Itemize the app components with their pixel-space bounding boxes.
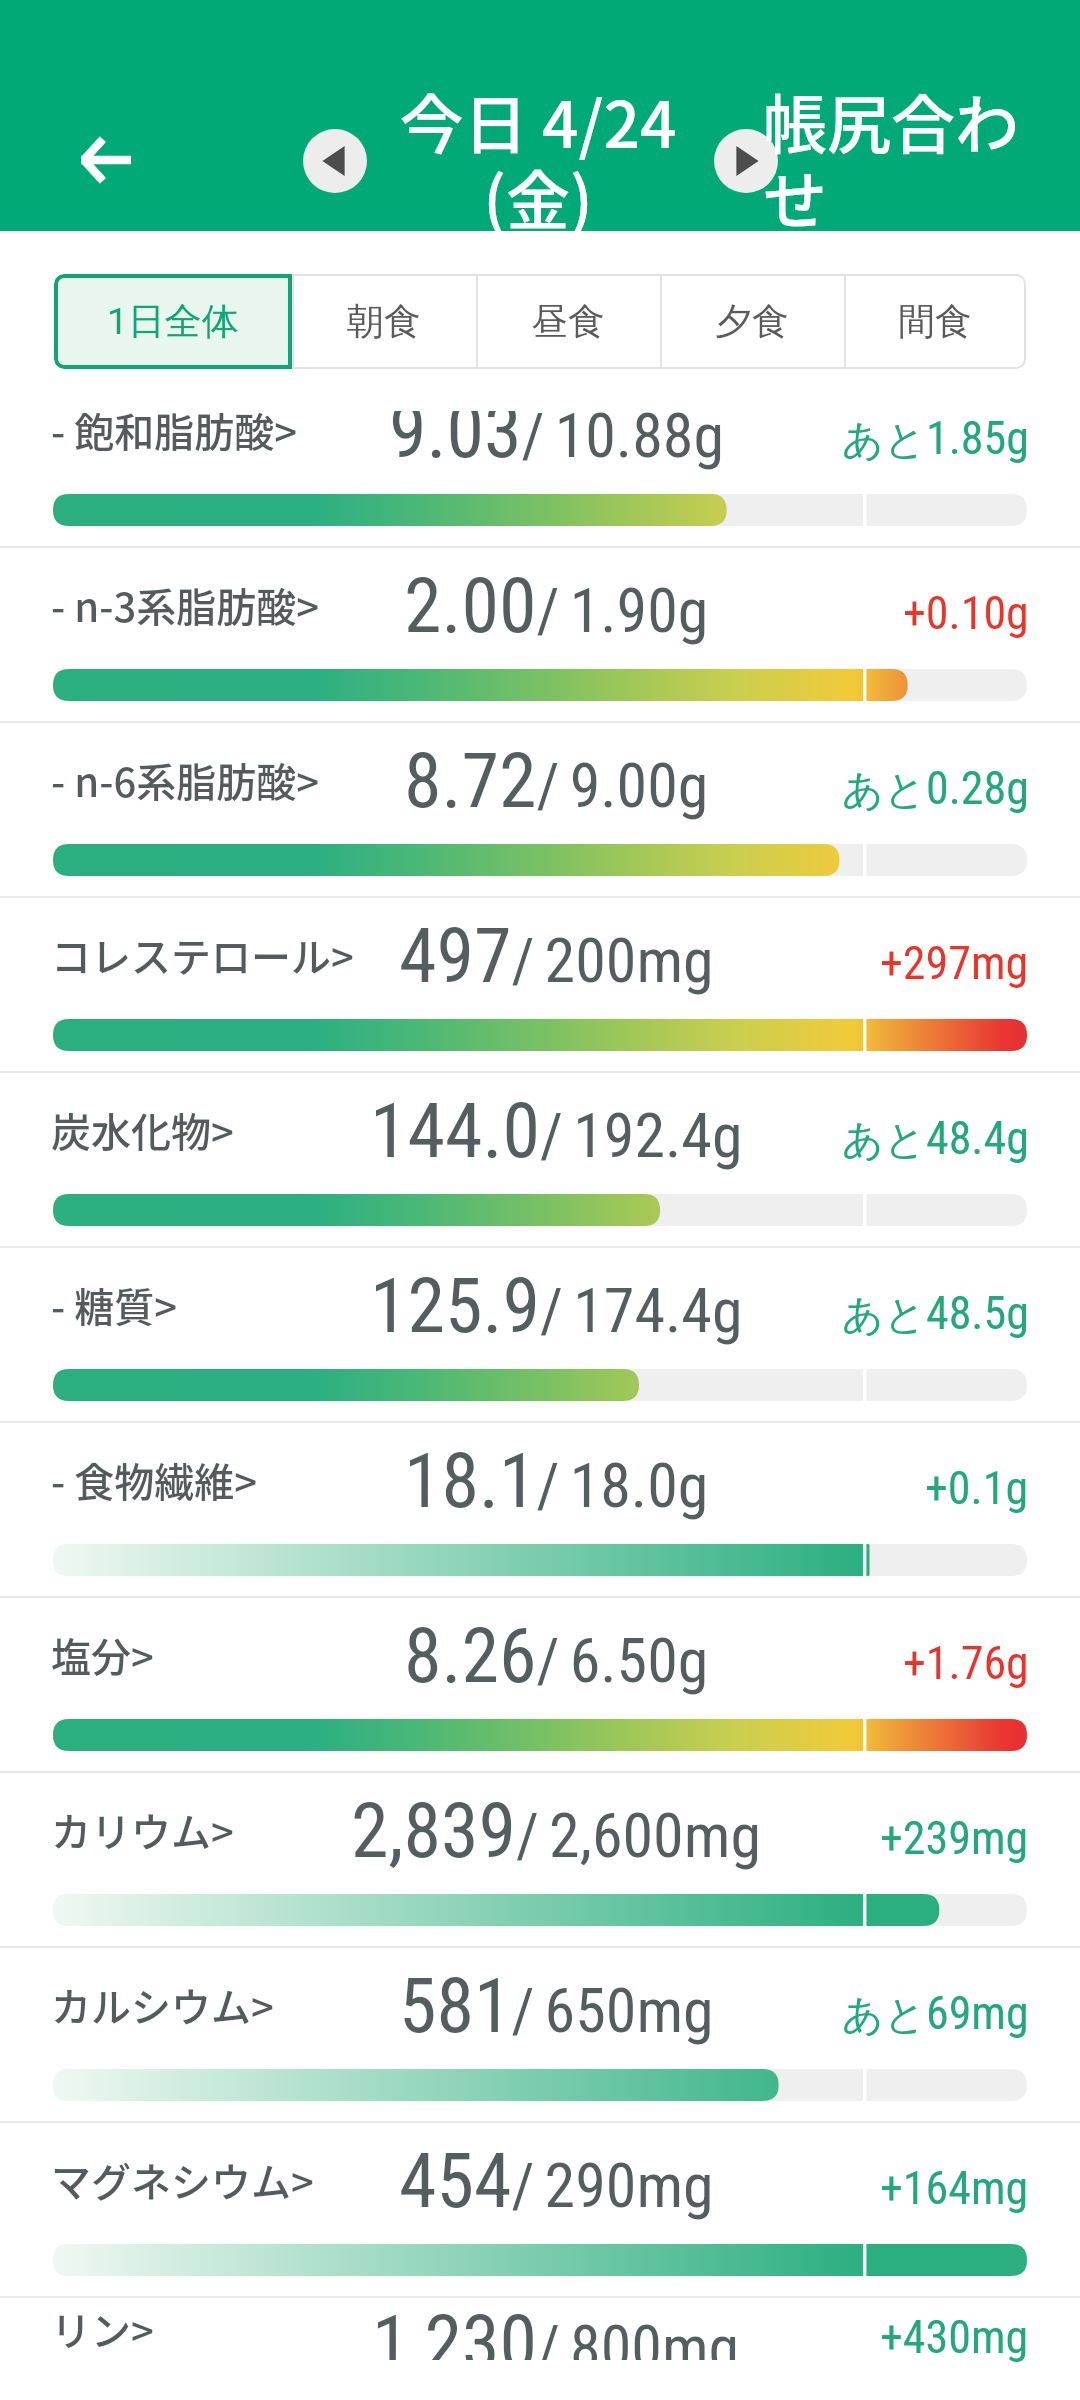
staticText: あと0.28g	[842, 761, 1029, 816]
button[interactable]: - 糖質>	[0, 1246, 1080, 1421]
staticText: カルシウム>	[51, 1976, 274, 2034]
button[interactable]: 間食	[844, 274, 1026, 369]
staticText: +164mg	[880, 2161, 1029, 2215]
staticText: 8.72/ 9.00g	[404, 736, 709, 825]
button[interactable]: 1日全体	[54, 274, 292, 369]
staticText: 今日 4/24 (金)	[338, 74, 738, 242]
staticText: 8.26/ 6.50g	[404, 1611, 709, 1700]
staticText: 18.1/ 18.0g	[404, 1436, 709, 1525]
staticText: +0.1g	[925, 1461, 1029, 1515]
staticText: - 食物繊維>	[51, 1451, 258, 1509]
staticText: - 糖質>	[51, 1276, 178, 1334]
staticText: 夕食	[715, 298, 789, 345]
staticText: 1日全体	[107, 298, 239, 345]
staticText: 朝食	[347, 298, 421, 345]
staticText: 454/ 290mg	[399, 2136, 714, 2225]
staticText: 2.00/ 1.90g	[404, 561, 709, 650]
staticText: +430mg	[880, 2310, 1029, 2364]
staticText: - n-3系脂肪酸>	[51, 576, 320, 634]
button[interactable]: リン>	[0, 2296, 1080, 2360]
button[interactable]: - n-6系脂肪酸>	[0, 721, 1080, 896]
staticText: - 飽和脂肪酸>	[51, 411, 298, 459]
button[interactable]: Back	[46, 100, 166, 220]
button[interactable]: Previous day	[303, 129, 367, 193]
staticText: リン>	[51, 2300, 154, 2358]
staticText: 125.9/ 174.4g	[370, 1261, 743, 1350]
button[interactable]: マグネシウム>	[0, 2121, 1080, 2296]
staticText: マグネシウム>	[51, 2151, 314, 2209]
staticText: 581/ 650mg	[399, 1961, 714, 2050]
staticText: あと48.5g	[842, 1286, 1029, 1341]
staticText: カリウム>	[51, 1801, 234, 1859]
button[interactable]: - n-3系脂肪酸>	[0, 546, 1080, 721]
staticText: 間食	[898, 298, 972, 345]
staticText: コレステロール>	[51, 926, 354, 984]
staticText: +297mg	[880, 936, 1029, 990]
button[interactable]: 朝食	[292, 274, 476, 369]
staticText: 9.03/ 10.88g	[389, 411, 724, 475]
staticText: あと48.4g	[842, 1111, 1029, 1166]
staticText: 144.0/ 192.4g	[370, 1086, 743, 1175]
staticText: +0.10g	[903, 586, 1029, 640]
staticText: あと69mg	[842, 1986, 1029, 2041]
button[interactable]: カリウム>	[0, 1771, 1080, 1946]
staticText: +239mg	[880, 1811, 1029, 1865]
button[interactable]: コレステロール>	[0, 896, 1080, 1071]
staticText: 2,839/ 2,600mg	[351, 1786, 761, 1875]
button[interactable]: 炭水化物>	[0, 1071, 1080, 1246]
staticText: 1,230/ 800mg	[372, 2298, 740, 2360]
button[interactable]: 塩分>	[0, 1596, 1080, 1771]
button[interactable]: - 食物繊維>	[0, 1421, 1080, 1596]
staticText: +1.76g	[903, 1636, 1029, 1690]
button[interactable]: - 飽和脂肪酸>	[0, 411, 1080, 546]
button[interactable]: 昼食	[476, 274, 660, 369]
staticText: - n-6系脂肪酸>	[51, 751, 320, 809]
staticText: 497/ 200mg	[399, 911, 714, 1000]
button[interactable]: 夕食	[660, 274, 844, 369]
button[interactable]: カルシウム>	[0, 1946, 1080, 2121]
staticText: 昼食	[531, 298, 605, 345]
staticText: あと1.85g	[842, 411, 1029, 466]
button[interactable]: 1日全体	[54, 274, 292, 369]
button[interactable]: Next day	[714, 129, 778, 193]
button[interactable]: 帳尻合わせ	[763, 74, 1021, 242]
staticText: 1日全体	[107, 298, 239, 345]
staticText: 塩分>	[51, 1626, 154, 1684]
staticText: 炭水化物>	[51, 1101, 234, 1159]
